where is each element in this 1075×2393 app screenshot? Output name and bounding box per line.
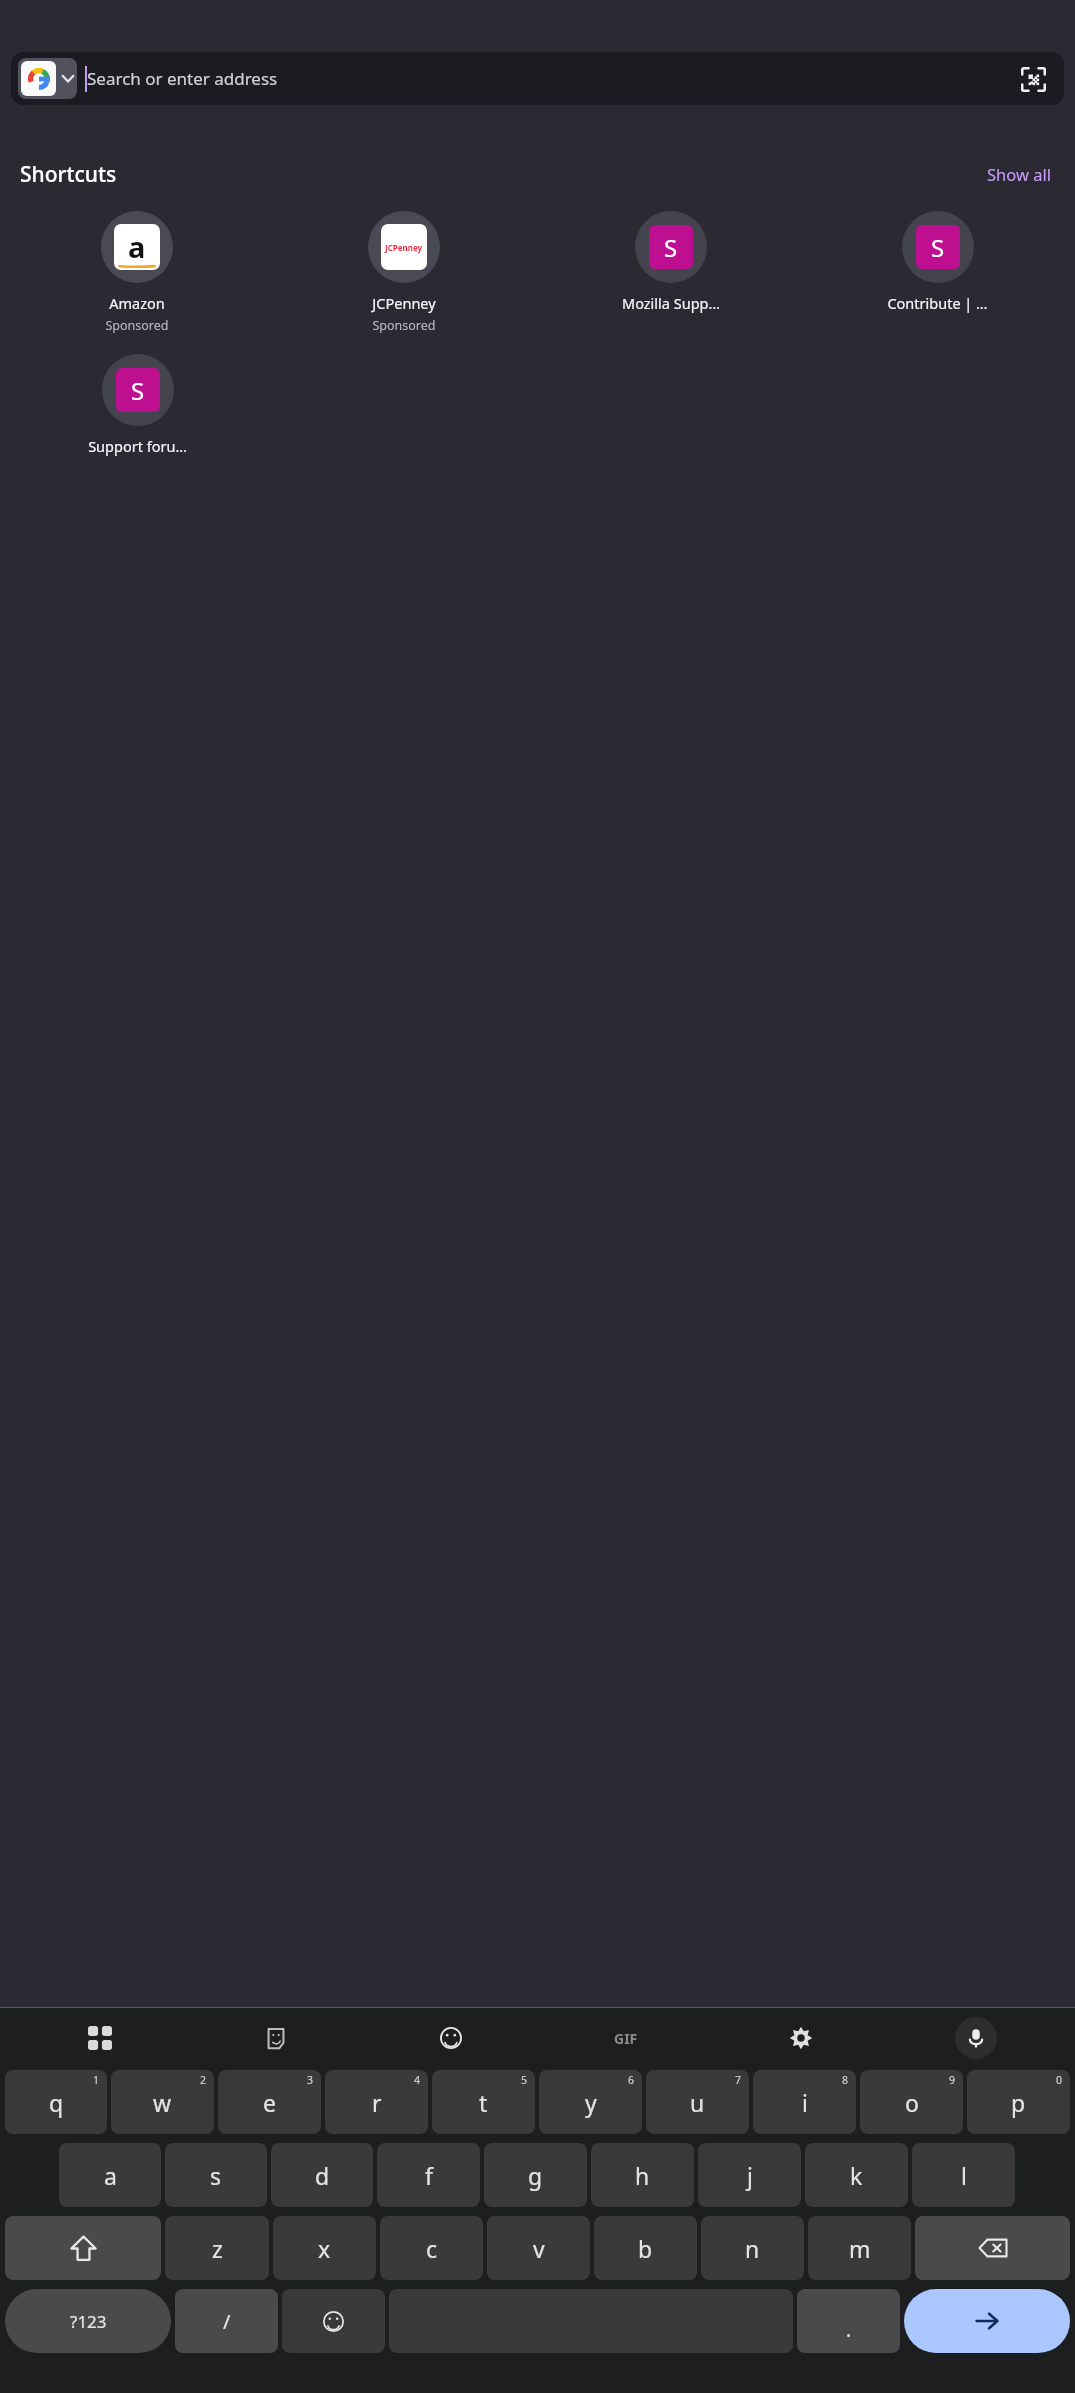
- staticText: GIF: [614, 2029, 638, 2048]
- button[interactable]: Keyboard layouts: [12, 2014, 188, 2062]
- staticText: 6: [628, 2073, 635, 2087]
- button[interactable]: 4: [325, 2070, 428, 2134]
- button[interactable]: f: [377, 2143, 480, 2207]
- staticText: c: [426, 2233, 438, 2264]
- staticText: Mozilla Supp…: [622, 293, 720, 313]
- staticText: 3: [307, 2073, 314, 2087]
- staticText: 8: [842, 2073, 849, 2087]
- staticText: .: [846, 2317, 852, 2343]
- button[interactable]: Search engine: [18, 58, 77, 99]
- button[interactable]: 9: [860, 2070, 963, 2134]
- staticText: p: [1011, 2087, 1026, 2118]
- button[interactable]: 3: [218, 2070, 321, 2134]
- button[interactable]: m: [808, 2216, 911, 2280]
- staticText: Shortcuts: [20, 160, 117, 189]
- staticText: f: [425, 2160, 433, 2191]
- staticText: x: [318, 2233, 331, 2264]
- staticText: w: [153, 2087, 172, 2118]
- staticText: n: [745, 2233, 760, 2264]
- staticText: q: [49, 2087, 64, 2118]
- staticText: s: [210, 2160, 222, 2191]
- staticText: z: [212, 2233, 223, 2264]
- button[interactable]: Search engine: [11, 52, 1064, 105]
- button[interactable]: 1: [5, 2070, 107, 2134]
- button[interactable]: .: [797, 2289, 900, 2353]
- button[interactable]: 5: [432, 2070, 535, 2134]
- button[interactable]: v: [487, 2216, 590, 2280]
- staticText: Support foru…: [88, 436, 187, 456]
- button[interactable]: S: [4, 354, 271, 456]
- staticText: m: [849, 2233, 871, 2264]
- staticText: Contribute | …: [887, 293, 988, 313]
- staticText: JCPenney: [385, 242, 423, 253]
- staticText: i: [802, 2087, 808, 2118]
- staticText: a: [104, 2160, 117, 2191]
- staticText: S: [664, 231, 678, 264]
- staticText: S: [131, 374, 145, 407]
- button[interactable]: h: [591, 2143, 694, 2207]
- button[interactable]: j: [698, 2143, 801, 2207]
- staticText: JCPenney: [372, 293, 436, 313]
- staticText: y: [585, 2087, 597, 2118]
- button[interactable]: ?123: [5, 2289, 171, 2353]
- button[interactable]: d: [271, 2143, 373, 2207]
- button[interactable]: 0: [967, 2070, 1070, 2134]
- staticText: d: [315, 2160, 330, 2191]
- button[interactable]: Show all: [983, 159, 1055, 189]
- button[interactable]: Emoji: [363, 2014, 538, 2062]
- staticText: g: [528, 2160, 543, 2191]
- staticText: j: [747, 2160, 753, 2191]
- button[interactable]: GIF: [538, 2014, 713, 2062]
- button[interactable]: Backspace: [915, 2216, 1070, 2280]
- staticText: 0: [1056, 2073, 1063, 2087]
- staticText: Sponsored: [105, 317, 169, 334]
- button[interactable]: Emoji: [282, 2289, 385, 2353]
- button[interactable]: JCPenney: [270, 211, 537, 334]
- button[interactable]: Voice input: [955, 2017, 997, 2059]
- staticText: r: [372, 2087, 382, 2118]
- staticText: o: [905, 2087, 919, 2118]
- button[interactable]: Stickers: [188, 2014, 363, 2062]
- staticText: a: [128, 227, 146, 266]
- button[interactable]: g: [484, 2143, 587, 2207]
- button[interactable]: 2: [111, 2070, 214, 2134]
- button[interactable]: 8: [753, 2070, 856, 2134]
- staticText: k: [850, 2160, 863, 2191]
- staticText: b: [638, 2233, 653, 2264]
- staticText: 9: [949, 2073, 956, 2087]
- staticText: ?123: [70, 2310, 107, 2333]
- staticText: u: [690, 2087, 705, 2118]
- button[interactable]: x: [273, 2216, 376, 2280]
- staticText: 5: [521, 2073, 528, 2087]
- button[interactable]: 6: [539, 2070, 642, 2134]
- button[interactable]: l: [912, 2143, 1015, 2207]
- button[interactable]: Settings: [713, 2014, 888, 2062]
- button[interactable]: s: [165, 2143, 267, 2207]
- staticText: l: [961, 2160, 967, 2191]
- staticText: 1: [93, 2073, 100, 2087]
- staticText: v: [533, 2233, 545, 2264]
- button[interactable]: k: [805, 2143, 908, 2207]
- button[interactable]: b: [594, 2216, 697, 2280]
- staticText: Search or enter address: [87, 67, 278, 90]
- button[interactable]: /: [175, 2289, 278, 2353]
- button[interactable]: a: [59, 2143, 161, 2207]
- button[interactable]: S: [537, 211, 804, 313]
- staticText: t: [479, 2087, 488, 2118]
- staticText: Show all: [987, 163, 1051, 185]
- staticText: 4: [414, 2073, 421, 2087]
- button[interactable]: z: [165, 2216, 269, 2280]
- button[interactable]: Scan QR code: [1013, 59, 1053, 99]
- staticText: 2: [200, 2073, 207, 2087]
- button[interactable]: Go: [904, 2289, 1070, 2353]
- button[interactable]: a: [4, 211, 270, 334]
- staticText: S: [931, 231, 945, 264]
- button[interactable]: Shift: [5, 2216, 161, 2280]
- button[interactable]: c: [380, 2216, 483, 2280]
- button[interactable]: S: [804, 211, 1071, 313]
- button[interactable]: 7: [646, 2070, 749, 2134]
- button[interactable]: n: [701, 2216, 804, 2280]
- staticText: /: [223, 2308, 231, 2335]
- staticText: 7: [735, 2073, 742, 2087]
